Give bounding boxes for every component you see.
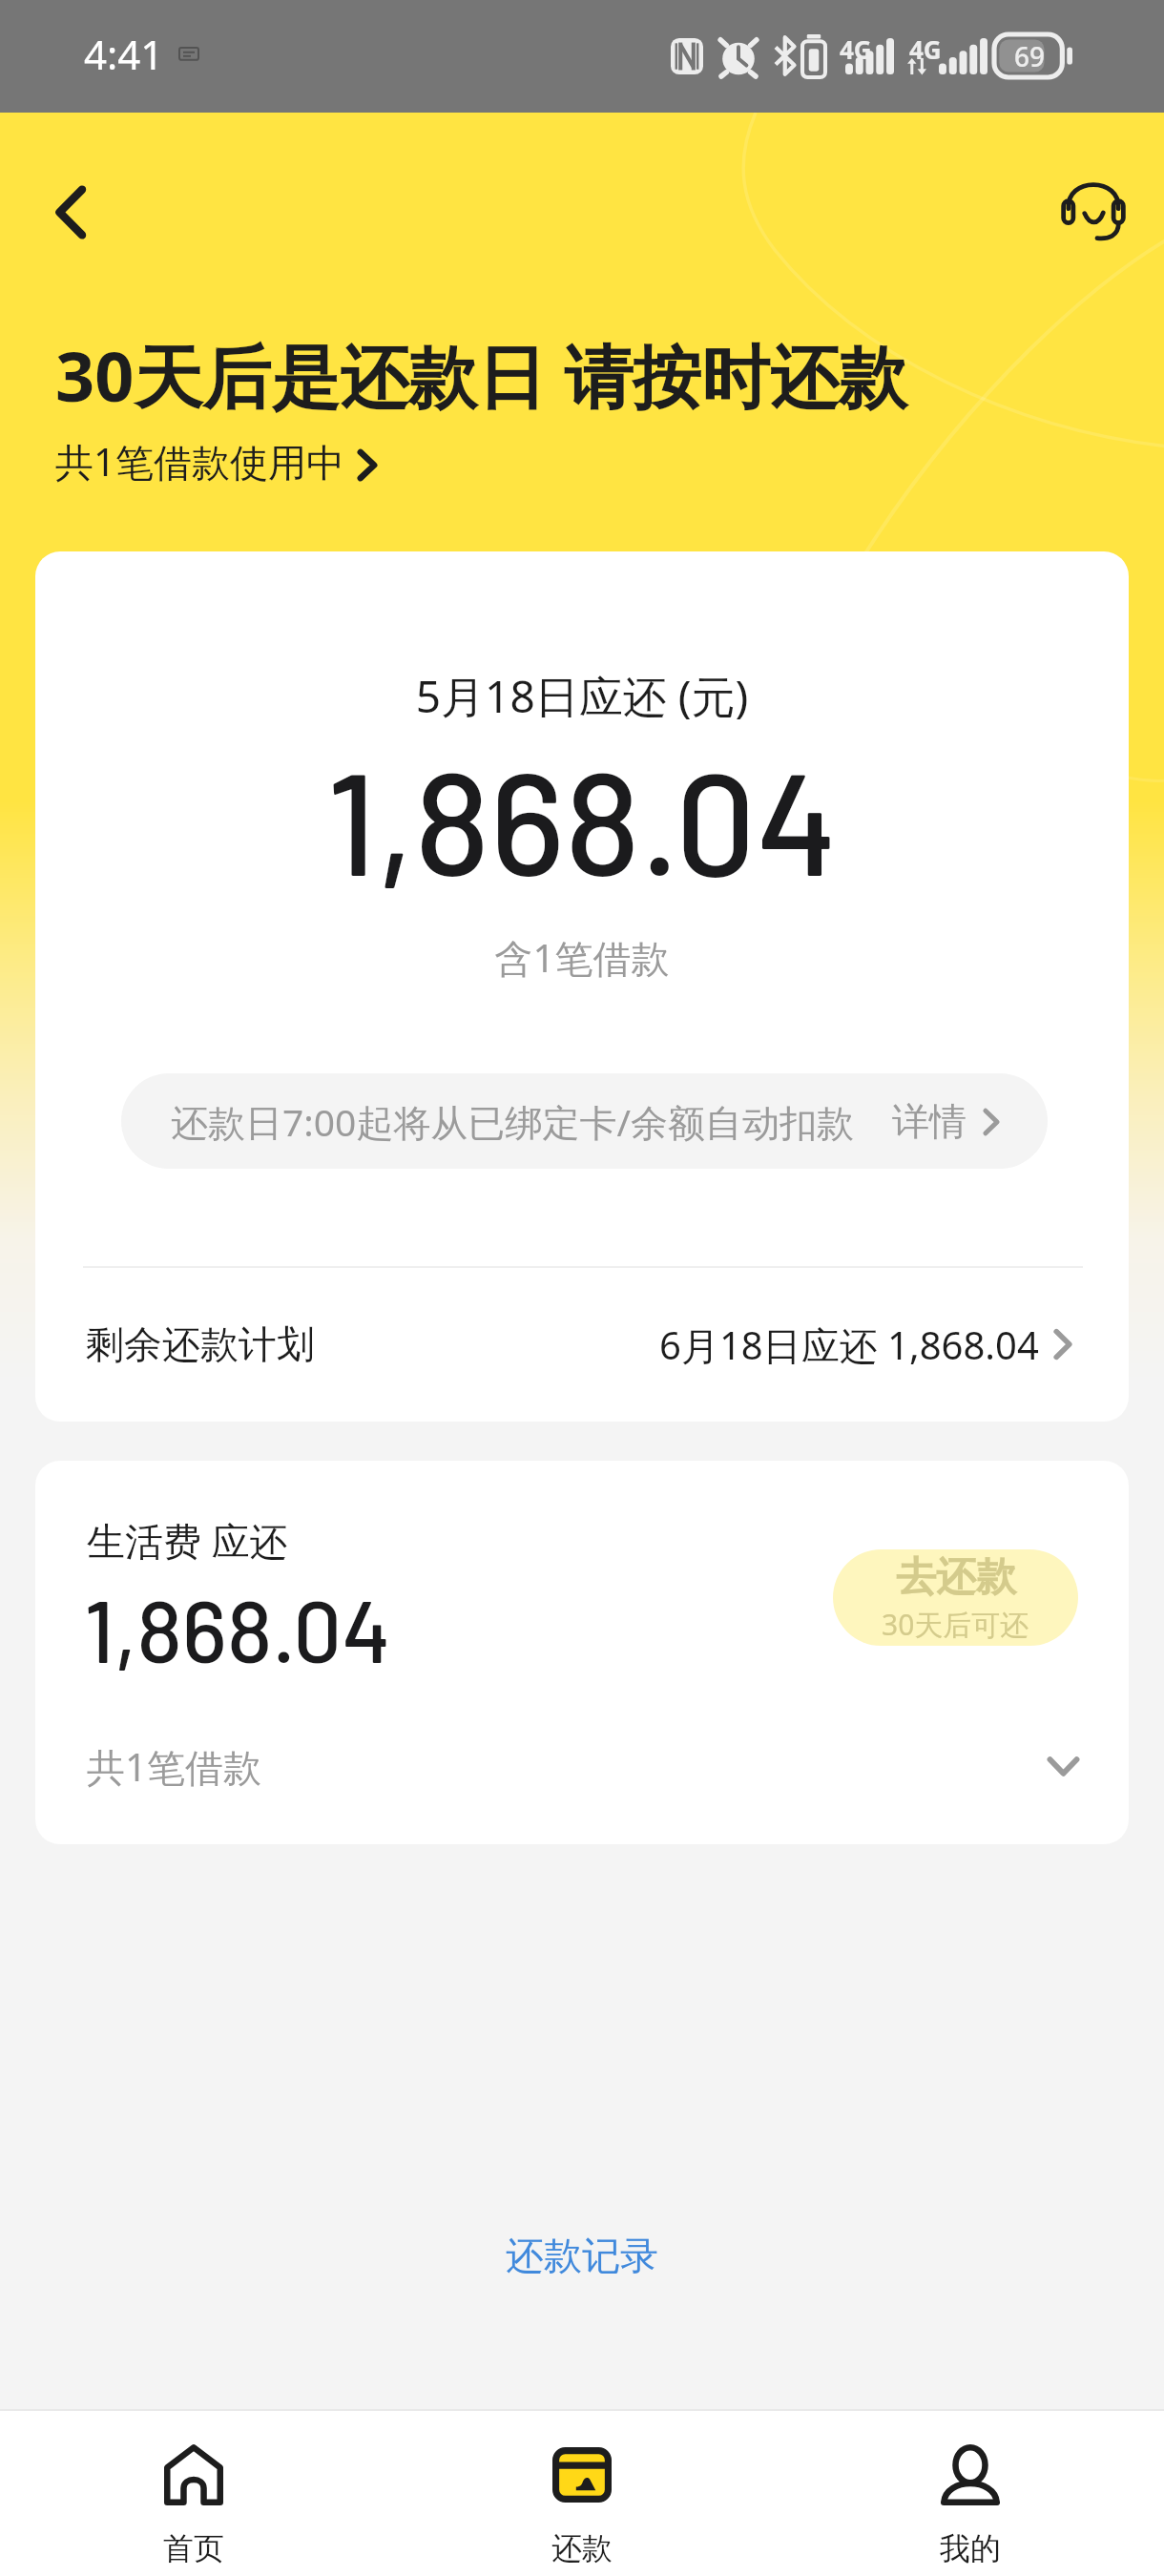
- staticText: 首页: [163, 2529, 224, 2567]
- button[interactable]: 我的: [776, 2411, 1164, 2576]
- staticText: 我的: [940, 2529, 1001, 2567]
- button[interactable]: 还款记录: [468, 2211, 696, 2300]
- staticText: 含1笔借款: [35, 931, 1129, 984]
- staticText: 剩余还款计划: [86, 1320, 315, 1368]
- staticText: 6月18日应还 1,868.04: [659, 1319, 1039, 1371]
- staticText: 详情: [892, 1098, 967, 1145]
- staticText: 还款日7:00起将从已绑定卡/余额自动扣款: [171, 1096, 854, 1147]
- staticText: 4G: [840, 32, 872, 66]
- button[interactable]: 首页: [0, 2411, 387, 2576]
- button[interactable]: 还款: [387, 2411, 776, 2576]
- staticText: 30天后是还款日 请按时还款: [55, 328, 908, 422]
- staticText: 共1笔借款: [87, 1740, 261, 1793]
- staticText: 1,868.04: [84, 1577, 391, 1680]
- button[interactable]: 共1笔借款使用中: [55, 431, 376, 491]
- staticText: 69: [1014, 38, 1046, 74]
- button[interactable]: 剩余还款计划: [35, 1267, 1129, 1422]
- button[interactable]: Back: [27, 169, 113, 255]
- staticText: 30天后可还: [882, 1605, 1029, 1644]
- staticText: 4:41: [84, 27, 164, 81]
- staticText: 4G: [909, 32, 942, 66]
- button[interactable]: 还款日7:00起将从已绑定卡/余额自动扣款: [121, 1073, 1048, 1169]
- staticText: 还款记录: [506, 2232, 658, 2279]
- staticText: 生活费 应还: [87, 1514, 288, 1567]
- staticText: 还款: [551, 2529, 613, 2567]
- staticText: 5月18日应还 (元): [35, 666, 1129, 726]
- staticText: 共1笔借款使用中: [55, 435, 344, 488]
- staticText: 1,868.04: [35, 733, 1129, 904]
- button[interactable]: 共1笔借款: [35, 1709, 1129, 1823]
- staticText: 去还款: [896, 1552, 1016, 1603]
- button[interactable]: 去还款: [833, 1549, 1078, 1646]
- button[interactable]: Customer service: [1050, 162, 1136, 248]
